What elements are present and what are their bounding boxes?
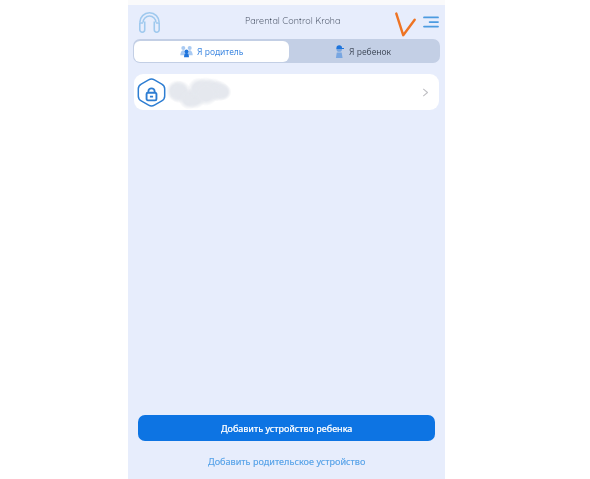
staticText: Я родитель [197,46,244,58]
button[interactable]: Добавить родительское устройство [128,452,445,470]
staticText: Parental Control Kroha [245,15,341,26]
button[interactable]: Support [135,8,163,36]
button[interactable] [134,74,439,110]
button[interactable]: Я ребенок [287,39,440,63]
button[interactable]: Logo [392,11,418,37]
staticText: Добавить устройство ребенка [221,422,353,434]
button[interactable]: Я родитель [134,41,289,62]
button[interactable]: Добавить устройство ребенка [138,415,435,441]
button[interactable]: Menu [421,12,441,32]
staticText: Добавить родительское устройство [208,455,366,467]
staticText: Я ребенок [349,46,392,58]
